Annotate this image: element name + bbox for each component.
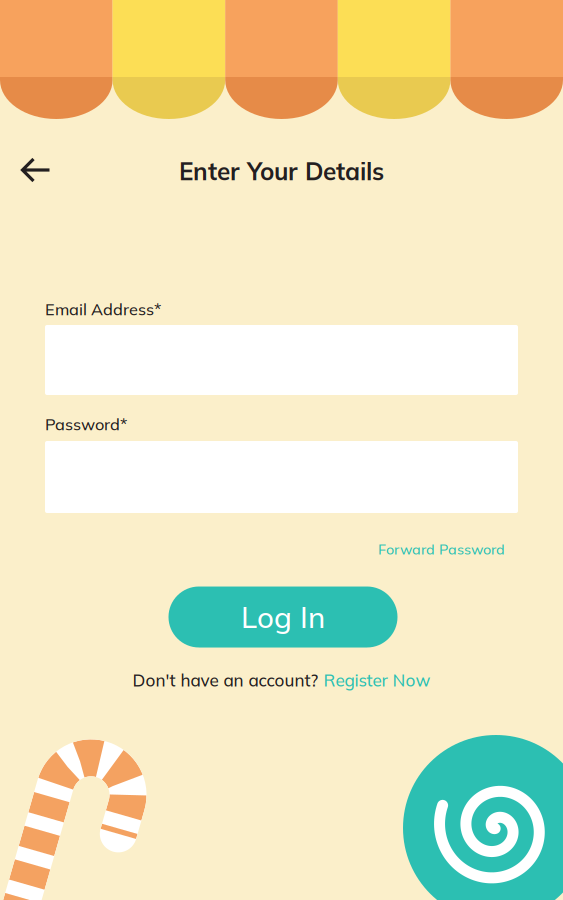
staticText: Email Address* (45, 299, 161, 319)
staticText: Forward Password (378, 540, 505, 558)
button[interactable]: Log In (168, 586, 397, 647)
button[interactable]: Register Now (323, 669, 430, 691)
button[interactable]: Back (8, 142, 64, 198)
staticText: Enter Your Details (179, 156, 384, 186)
staticText: Password* (45, 414, 127, 434)
staticText: Log In (241, 599, 325, 635)
staticText: Register Now (323, 669, 430, 691)
staticText: Don't have an account? (132, 669, 323, 691)
button[interactable]: Forward Password (378, 536, 505, 562)
